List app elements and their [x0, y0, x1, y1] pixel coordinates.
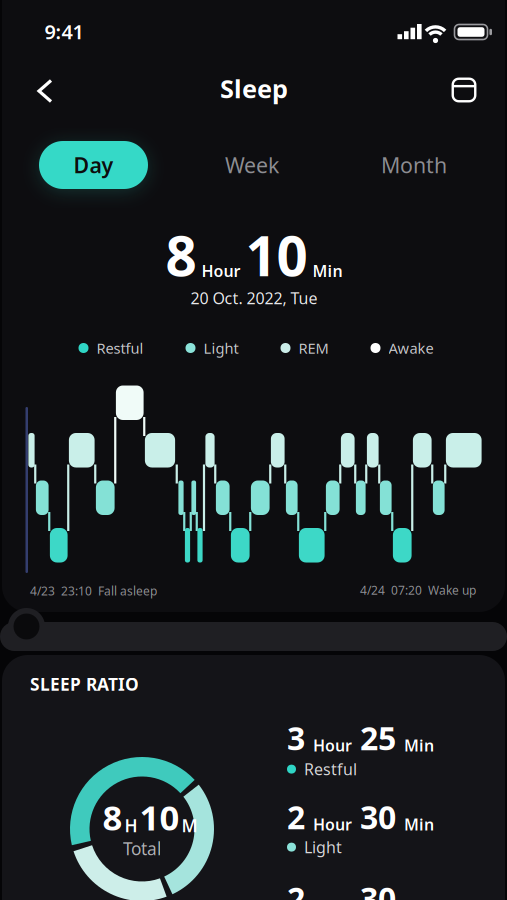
staticText: Hour [201, 260, 240, 281]
staticText: 8 [165, 219, 196, 291]
staticText: Light [304, 836, 342, 858]
button[interactable]: Week [197, 141, 306, 189]
staticText: Day [73, 151, 113, 179]
staticText: 9:41 [44, 18, 83, 45]
staticText: 4/23 23:10 Fall asleep [30, 583, 157, 599]
staticText: SLEEP RATIO [30, 672, 139, 695]
staticText: 8 [102, 794, 122, 840]
staticText: 4/24 07:20 Wake up [360, 582, 476, 598]
staticText: Min [312, 260, 342, 281]
staticText: M [181, 814, 197, 837]
staticText: 10 [245, 219, 307, 291]
button[interactable]: Back [29, 70, 61, 111]
staticText: 2 [287, 795, 305, 838]
button[interactable]: Month [359, 141, 468, 189]
staticText: 20 Oct. 2022, Tue [190, 287, 317, 309]
staticText: Hour [313, 735, 352, 756]
staticText: Light [203, 338, 238, 358]
staticText: Awake [388, 338, 433, 358]
staticText: 3 [287, 716, 305, 759]
staticText: Month [381, 151, 447, 179]
staticText: Week [225, 151, 279, 179]
staticText: Restful [304, 758, 357, 780]
staticText: H [124, 814, 137, 837]
button[interactable]: Chart position [8, 608, 45, 645]
staticText: 30 [360, 795, 396, 838]
staticText: Hour [313, 814, 352, 835]
staticText: REM [298, 338, 328, 358]
staticText: Sleep [220, 72, 288, 105]
staticText: Restful [96, 338, 143, 358]
staticText: Total [123, 837, 161, 860]
staticText: 25 [360, 716, 396, 759]
staticText: 2 [287, 877, 305, 900]
button[interactable]: Sleep records [445, 71, 483, 109]
staticText: Min [404, 814, 434, 835]
staticText: 30 [360, 877, 396, 900]
staticText: 10 [139, 794, 179, 840]
button[interactable]: Day [39, 141, 148, 189]
staticText: Min [404, 735, 434, 756]
